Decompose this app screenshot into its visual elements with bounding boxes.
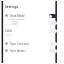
button[interactable]: Table xyxy=(5,28,57,33)
staticText: Layout xyxy=(5,34,12,37)
staticText: Dark Mode xyxy=(10,14,25,18)
button[interactable]: Auto xyxy=(10,21,18,25)
staticText: Table xyxy=(5,29,13,33)
button[interactable]: Sync Notes xyxy=(5,48,57,53)
staticText: Follow system xyxy=(10,18,25,21)
button[interactable]: Toggle setting xyxy=(49,21,57,25)
button[interactable]: Sync Contacts xyxy=(5,41,57,46)
staticText: Settings xyxy=(5,5,19,9)
staticText: Sync Notes xyxy=(10,49,25,53)
button[interactable]: Toggle setting xyxy=(49,14,57,18)
button[interactable]: Toggle setting xyxy=(49,49,57,53)
button[interactable]: Dark Mode xyxy=(5,13,57,18)
staticText: Auto xyxy=(12,22,17,25)
staticText: Sync Contacts xyxy=(10,42,29,46)
button[interactable]: Toggle setting xyxy=(49,42,57,46)
button[interactable]: Toggle setting xyxy=(49,29,57,33)
